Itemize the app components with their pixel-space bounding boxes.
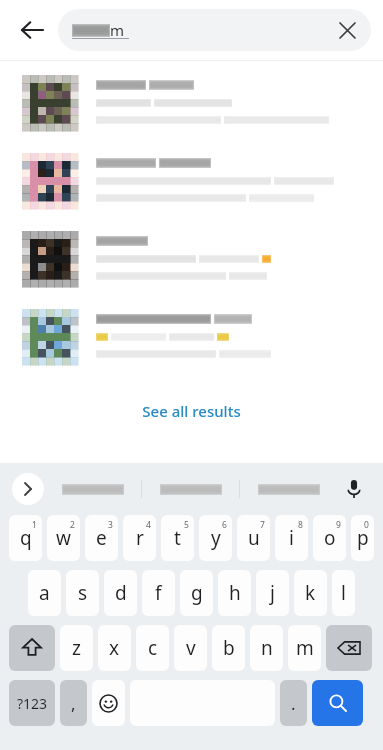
button[interactable]: ?123 [9, 680, 55, 726]
button[interactable]: p [351, 515, 374, 561]
button[interactable]: x [98, 625, 131, 671]
staticText: t [174, 525, 181, 551]
button[interactable]: v [174, 625, 207, 671]
button[interactable]: q [9, 515, 42, 561]
staticText: c [148, 635, 158, 661]
button[interactable]: , [60, 680, 87, 726]
staticText: e [96, 525, 107, 551]
staticText: v [186, 635, 196, 661]
button[interactable]: m [288, 625, 321, 671]
button[interactable]: a [28, 570, 61, 616]
button[interactable]: s [66, 570, 99, 616]
button[interactable]: y [199, 515, 232, 561]
button[interactable]: Search [312, 680, 363, 726]
button[interactable]: Back [10, 8, 54, 52]
staticText: u [248, 525, 260, 551]
button[interactable]: r [123, 515, 156, 561]
staticText: 7 [260, 519, 265, 531]
staticText: 9 [336, 519, 341, 531]
staticText: 5 [184, 519, 189, 531]
button[interactable]: k [294, 570, 327, 616]
button[interactable]: h [218, 570, 251, 616]
staticText: w [56, 525, 71, 551]
staticText: h [229, 580, 241, 606]
staticText: q [20, 525, 32, 551]
staticText: l [341, 580, 346, 606]
button[interactable]: See all results [0, 393, 383, 429]
button[interactable]: m [58, 9, 371, 51]
staticText: . [291, 692, 296, 715]
staticText: 8 [298, 519, 303, 531]
button[interactable]: o [313, 515, 346, 561]
staticText: m [110, 20, 125, 40]
staticText: See all results [142, 401, 241, 421]
button[interactable]: l [332, 570, 355, 616]
staticText: k [305, 580, 316, 606]
button[interactable] [0, 61, 383, 137]
staticText: i [289, 525, 294, 551]
staticText: y [211, 525, 221, 551]
button[interactable] [0, 137, 383, 215]
staticText: j [270, 580, 275, 606]
button[interactable]: Shift [9, 625, 55, 671]
button[interactable]: e [85, 515, 118, 561]
button[interactable]: g [180, 570, 213, 616]
button[interactable]: Emoji [92, 680, 125, 726]
button[interactable]: z [60, 625, 93, 671]
button[interactable]: w [47, 515, 80, 561]
button[interactable]: b [212, 625, 245, 671]
button[interactable]: j [256, 570, 289, 616]
button[interactable]: u [237, 515, 270, 561]
staticText: d [115, 580, 127, 606]
button[interactable] [0, 215, 383, 293]
button[interactable]: More suggestions [12, 473, 44, 505]
staticText: g [191, 580, 203, 606]
staticText: ?123 [17, 694, 48, 713]
button[interactable]: i [275, 515, 308, 561]
staticText: x [109, 635, 120, 661]
staticText: 0 [364, 519, 369, 531]
button[interactable] [0, 293, 383, 371]
button[interactable]: Clear search [327, 10, 367, 50]
staticText: 1 [32, 519, 37, 531]
staticText: n [261, 635, 273, 661]
staticText: 3 [108, 519, 113, 531]
button[interactable] [240, 484, 337, 495]
button[interactable]: n [250, 625, 283, 671]
button[interactable]: . [280, 680, 307, 726]
button[interactable]: c [136, 625, 169, 671]
button[interactable]: t [161, 515, 194, 561]
staticText: p [357, 525, 369, 551]
button[interactable]: Voice input [337, 472, 371, 506]
staticText: s [78, 580, 88, 606]
staticText: o [324, 525, 336, 551]
staticText: 6 [222, 519, 227, 531]
button[interactable] [44, 484, 141, 495]
staticText: a [39, 580, 50, 606]
button[interactable]: f [142, 570, 175, 616]
staticText: r [136, 525, 144, 551]
button[interactable] [142, 484, 239, 495]
button[interactable]: Backspace [326, 625, 372, 671]
staticText: 2 [70, 519, 75, 531]
button[interactable]: d [104, 570, 137, 616]
staticText: m [296, 635, 314, 661]
staticText: f [155, 580, 162, 606]
staticText: z [72, 635, 81, 661]
staticText: 4 [146, 519, 151, 531]
staticText: b [223, 635, 235, 661]
staticText: , [71, 692, 76, 715]
